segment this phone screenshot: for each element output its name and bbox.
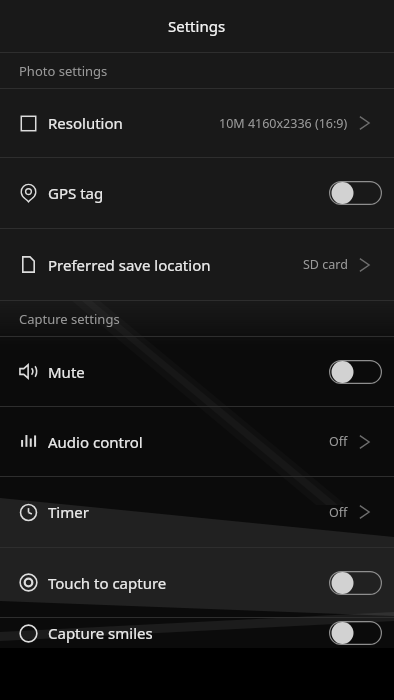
staticText: Mute: [48, 362, 85, 382]
staticText: Timer: [48, 502, 89, 522]
staticText: Photo settings: [19, 62, 108, 80]
staticText: Preferred save location: [48, 255, 211, 275]
staticText: Capture smiles: [48, 623, 153, 643]
staticText: Touch to capture: [48, 573, 167, 593]
staticText: Resolution: [48, 113, 123, 133]
button[interactable]: GPS tag: [0, 158, 394, 228]
staticText: Off: [329, 504, 348, 521]
button[interactable]: Touch to capture: [0, 548, 394, 617]
button[interactable]: Capture smiles: [0, 618, 394, 648]
staticText: GPS tag: [48, 183, 104, 203]
staticText: Audio control: [48, 432, 143, 452]
button[interactable]: Timer: [0, 477, 394, 547]
staticText: Capture settings: [19, 310, 120, 328]
staticText: SD card: [303, 256, 348, 273]
staticText: 10M 4160x2336 (16:9): [219, 115, 348, 132]
button[interactable]: Resolution: [0, 89, 394, 157]
button[interactable]: Audio control: [0, 407, 394, 476]
button[interactable]: Mute: [0, 337, 394, 406]
button[interactable]: Preferred save location: [0, 229, 394, 300]
staticText: Settings: [168, 16, 226, 36]
staticText: Off: [329, 433, 348, 450]
